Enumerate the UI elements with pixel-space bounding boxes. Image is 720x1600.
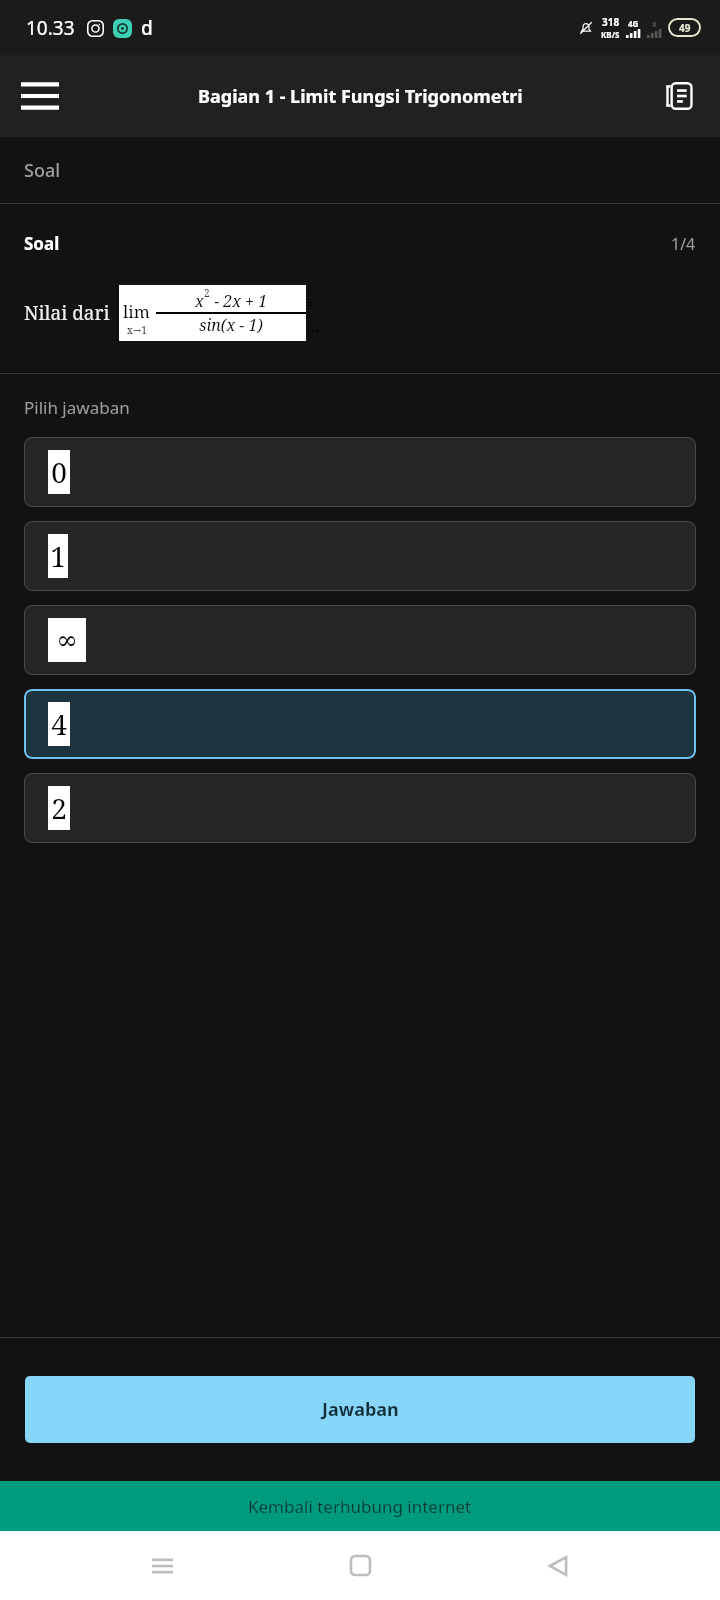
- staticText: x→1: [127, 323, 147, 337]
- button[interactable]: 4: [24, 689, 696, 759]
- staticText: x: [652, 18, 657, 29]
- staticText: 49: [679, 21, 691, 35]
- staticText: 2: [204, 286, 210, 300]
- staticText: 2: [51, 789, 67, 827]
- button[interactable]: Back: [522, 1531, 594, 1600]
- button[interactable]: Recent apps: [126, 1531, 198, 1600]
- staticText: 10.33: [26, 15, 75, 41]
- staticText: ∞: [56, 625, 78, 655]
- staticText: − 2x + 1: [210, 290, 268, 312]
- button[interactable]: 1: [24, 521, 696, 591]
- staticText: 318: [602, 15, 620, 29]
- staticText: Kembali terhubung internet: [248, 1495, 472, 1518]
- staticText: Pilih jawaban: [24, 396, 130, 419]
- staticText: Nilai dari: [24, 300, 110, 326]
- staticText: 1/4: [671, 233, 696, 255]
- staticText: x: [195, 290, 204, 312]
- staticText: d: [141, 15, 153, 41]
- staticText: Bagian 1 - Limit Fungsi Trigonometri: [198, 84, 523, 109]
- staticText: 0: [51, 453, 67, 491]
- staticText: sin(x − 1): [199, 314, 263, 336]
- staticText: Soal: [24, 232, 60, 255]
- button[interactable]: Menu: [8, 64, 72, 128]
- staticText: 4G: [628, 18, 639, 29]
- staticText: lim: [123, 300, 150, 323]
- staticText: 4: [51, 705, 67, 743]
- button[interactable]: ∞: [24, 605, 696, 675]
- staticText: Jawaban: [322, 1397, 399, 1422]
- button[interactable]: Jawaban: [25, 1376, 695, 1443]
- staticText: Soal: [24, 158, 61, 183]
- staticText: KB/S: [601, 29, 620, 40]
- button[interactable]: 0: [24, 437, 696, 507]
- staticText: 1: [50, 537, 66, 575]
- button[interactable]: Home: [324, 1531, 396, 1600]
- button[interactable]: 2: [24, 773, 696, 843]
- button[interactable]: Notes: [650, 67, 708, 125]
